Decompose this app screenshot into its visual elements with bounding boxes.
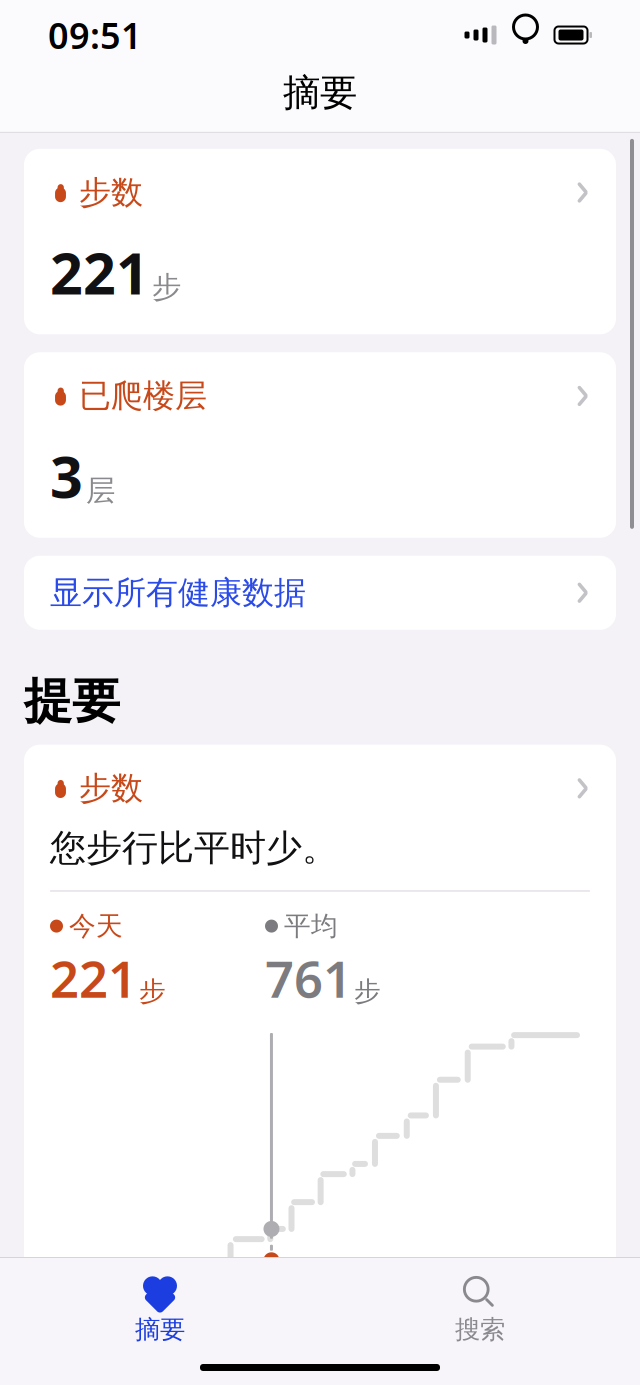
staticText: 今天 [69, 910, 123, 942]
staticText: 761 [265, 944, 352, 1012]
button[interactable]: 显示所有健康数据 [24, 556, 616, 630]
staticText: 平均 [284, 910, 338, 942]
staticText: 221 [50, 234, 149, 310]
staticText: 步 [139, 975, 166, 1008]
staticText: 显示所有健康数据 [50, 573, 306, 612]
staticText: 摘要 [283, 70, 357, 116]
staticText: 层 [86, 473, 115, 509]
staticText: 已爬楼层 [79, 376, 207, 416]
staticText: 3 [50, 438, 83, 514]
button[interactable]: 摘要 [0, 1268, 320, 1353]
staticText: 步 [354, 975, 381, 1008]
staticText: 步数 [79, 173, 143, 212]
staticText: 步数 [79, 769, 143, 808]
staticText: 提要 [24, 672, 120, 731]
button[interactable]: 搜索 [320, 1268, 640, 1353]
button[interactable]: 已爬楼层 [24, 352, 616, 538]
staticText: 搜索 [455, 1314, 505, 1345]
button[interactable]: 步数 [24, 745, 616, 1374]
staticText: 您步行比平时少。 [50, 826, 338, 870]
staticText: 09:51 [48, 11, 142, 59]
staticText: 摘要 [135, 1314, 185, 1345]
button[interactable]: 步数 [24, 149, 616, 334]
staticText: 步 [152, 269, 181, 305]
staticText: 221 [50, 944, 137, 1012]
